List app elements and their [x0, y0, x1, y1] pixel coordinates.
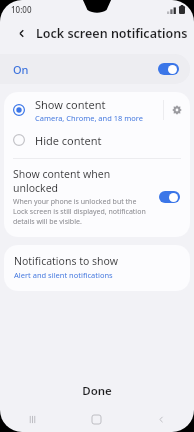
button[interactable]: Settings [164, 92, 190, 128]
button[interactable]: Hide content [4, 128, 190, 152]
button[interactable]: Notifications to show [4, 245, 190, 291]
staticText: Alert and silent notifications [14, 270, 113, 280]
button[interactable]: Recent apps [0, 406, 64, 432]
button[interactable]: Back [129, 406, 194, 432]
staticText: When your phone is unlocked but the Lock… [13, 197, 153, 227]
staticText: Notifications to show [14, 254, 118, 268]
staticText: Camera, Chrome, and 18 more [35, 113, 144, 123]
staticText: Show content [35, 97, 106, 112]
button[interactable]: Back [12, 24, 30, 42]
button[interactable]: Home [64, 406, 129, 432]
staticText: Hide content [35, 133, 102, 148]
button[interactable]: Show content [4, 92, 190, 128]
button[interactable]: On [0, 54, 190, 84]
staticText: 10:00 [11, 4, 32, 15]
staticText: Lock screen notifications [36, 25, 188, 42]
button[interactable]: Show content when unlocked [4, 159, 190, 237]
staticText: Done [82, 383, 112, 399]
staticText: Show content when unlocked [13, 167, 153, 195]
staticText: On [13, 62, 29, 77]
button[interactable]: Done [0, 376, 194, 406]
